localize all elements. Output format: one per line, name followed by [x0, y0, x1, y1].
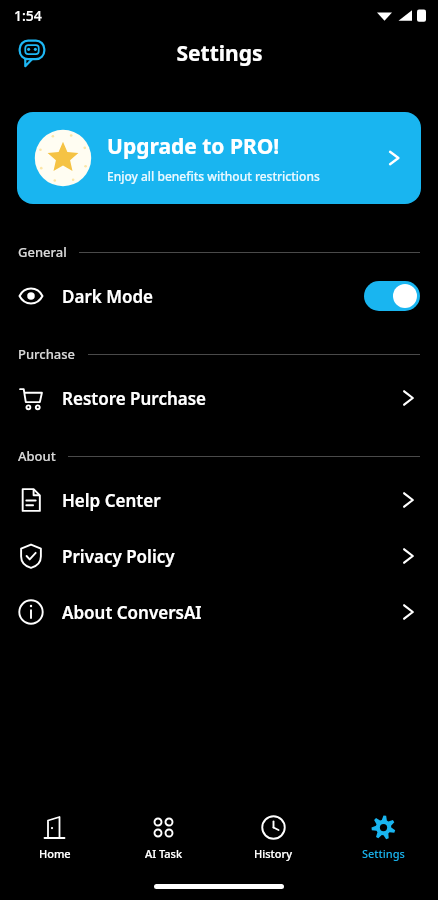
button[interactable]: Settings [328, 809, 438, 867]
staticText: Help Center [62, 489, 161, 512]
button[interactable]: Dark Mode toggle [364, 281, 420, 311]
staticText: Settings [362, 846, 405, 861]
button[interactable]: History [218, 809, 328, 867]
button[interactable]: Upgrade to PRO! [17, 112, 421, 204]
button[interactable]: Dark Mode [0, 268, 438, 324]
staticText: 1:54 [14, 6, 42, 25]
staticText: Privacy Policy [62, 545, 175, 568]
button[interactable]: Privacy Policy [0, 528, 438, 584]
staticText: Upgrade to PRO! [107, 132, 280, 161]
staticText: Settings [176, 39, 263, 68]
staticText: Enjoy all benefits without restrictions [107, 168, 320, 184]
staticText: Home [39, 846, 71, 861]
button[interactable]: AI Task [109, 809, 218, 867]
button[interactable]: Home [0, 809, 109, 867]
button[interactable]: ConversAI logo [14, 35, 50, 71]
staticText: Purchase [18, 345, 76, 363]
staticText: AI Task [145, 846, 183, 861]
button[interactable]: Restore Purchase [0, 370, 438, 426]
staticText: Dark Mode [62, 285, 154, 308]
staticText: History [254, 846, 292, 861]
staticText: About [18, 447, 56, 465]
staticText: About ConversAI [62, 601, 202, 624]
staticText: Restore Purchase [62, 387, 207, 410]
staticText: General [18, 243, 67, 261]
button[interactable]: About ConversAI [0, 584, 438, 640]
button[interactable]: Help Center [0, 472, 438, 528]
